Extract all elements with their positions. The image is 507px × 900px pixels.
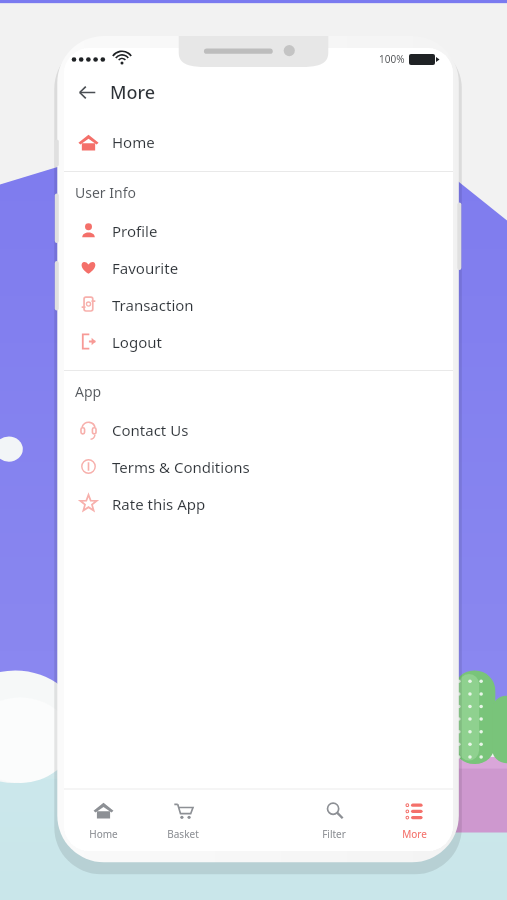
staticText: Filter — [322, 827, 346, 841]
button[interactable]: Filter — [299, 800, 369, 841]
button[interactable]: Rate this App — [64, 485, 453, 522]
button[interactable]: Logout — [64, 323, 453, 360]
button[interactable]: Basket — [148, 800, 218, 841]
staticText: More — [402, 827, 427, 841]
staticText: Logout — [112, 332, 162, 352]
staticText: More — [110, 80, 156, 105]
staticText: Contact Us — [112, 420, 189, 440]
staticText: Favourite — [112, 258, 179, 278]
button[interactable]: Home — [68, 800, 138, 841]
button[interactable]: More — [379, 800, 449, 841]
staticText: Rate this App — [112, 494, 206, 514]
staticText: Basket — [167, 827, 199, 841]
button[interactable]: Favourite — [64, 249, 453, 286]
staticText: Home — [89, 827, 118, 841]
staticText: User Info — [75, 183, 136, 202]
button[interactable]: Transaction — [64, 286, 453, 323]
button[interactable]: Contact Us — [64, 411, 453, 448]
button[interactable]: Home — [64, 122, 453, 162]
staticText: Profile — [112, 221, 158, 241]
staticText: App — [75, 382, 102, 401]
staticText: Transaction — [112, 295, 194, 315]
staticText: 100% — [379, 52, 405, 66]
button[interactable]: Back — [64, 70, 110, 114]
button[interactable]: Profile — [64, 212, 453, 249]
button[interactable]: Terms & Conditions — [64, 448, 453, 485]
staticText: Home — [112, 132, 155, 152]
staticText: Terms & Conditions — [112, 457, 250, 477]
